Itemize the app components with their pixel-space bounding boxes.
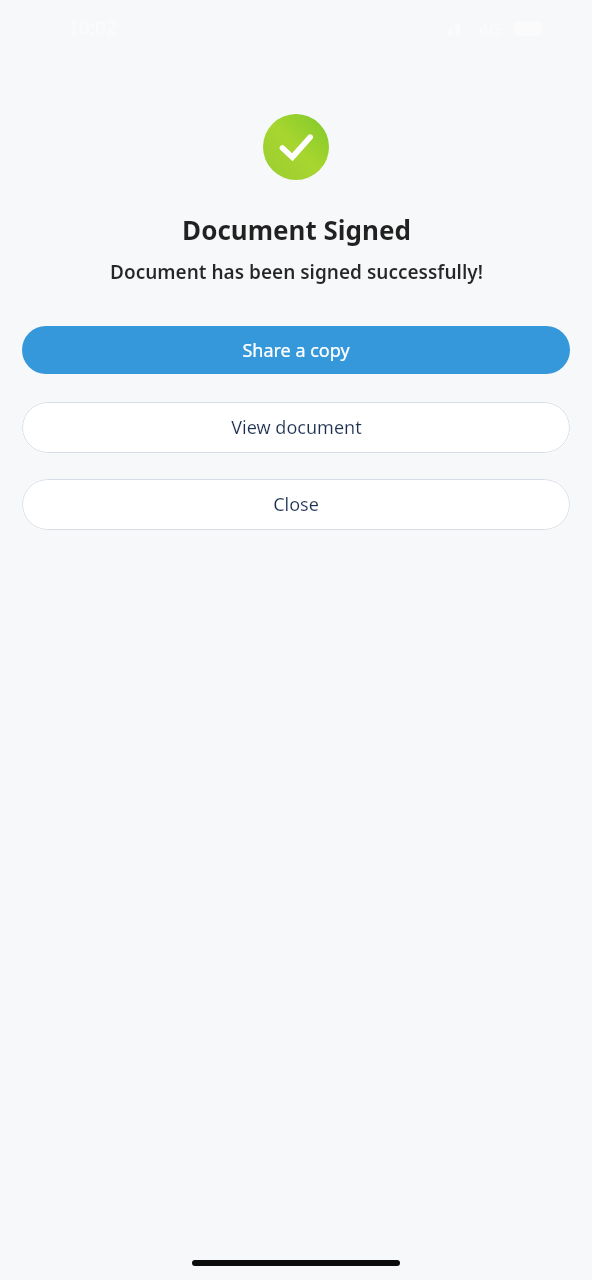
staticText: Close — [273, 492, 319, 517]
staticText: Document has been signed successfully! — [110, 259, 483, 285]
button[interactable]: Share a copy — [22, 326, 570, 374]
staticText: Document Signed — [182, 212, 411, 247]
button[interactable]: Close — [22, 479, 570, 530]
staticText: Share a copy — [242, 338, 350, 363]
staticText: View document — [231, 415, 362, 440]
button[interactable]: View document — [22, 402, 570, 453]
